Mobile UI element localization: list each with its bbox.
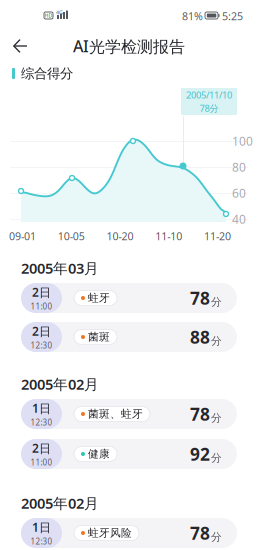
button[interactable]: 2日: [21, 322, 237, 352]
staticText: 88: [190, 325, 210, 348]
staticText: 100: [232, 133, 253, 149]
staticText: 78: [190, 402, 210, 425]
staticText: 菌斑: [88, 330, 110, 343]
staticText: 健康: [88, 447, 110, 460]
staticText: 09-01: [9, 229, 36, 243]
button[interactable]: Back: [5, 32, 37, 60]
staticText: 菌斑、蛀牙: [88, 407, 143, 420]
button[interactable]: 1日: [21, 518, 237, 548]
staticText: 分: [211, 411, 222, 424]
staticText: 5:25: [222, 9, 243, 23]
staticText: 2日: [32, 284, 51, 300]
staticText: HD: [44, 12, 52, 19]
staticText: 78: [190, 521, 210, 544]
staticText: 11:00: [30, 457, 52, 468]
staticText: 11:00: [30, 301, 52, 312]
staticText: 分: [211, 451, 222, 464]
staticText: 60: [232, 185, 246, 201]
staticText: 11-10: [155, 229, 182, 243]
button[interactable]: 1日: [21, 399, 237, 429]
staticText: 10-05: [58, 229, 85, 243]
staticText: 综合得分: [21, 65, 73, 82]
staticText: 92: [190, 442, 210, 465]
staticText: 2005年03月: [21, 258, 99, 278]
staticText: 4G: [56, 9, 63, 16]
staticText: 40: [232, 211, 246, 227]
staticText: 分: [211, 334, 222, 347]
staticText: 蛀牙风险: [88, 526, 132, 539]
staticText: 2日: [32, 323, 51, 339]
staticText: 12:30: [30, 340, 52, 351]
button[interactable]: 2日: [21, 283, 237, 313]
staticText: 12:30: [30, 417, 52, 428]
staticText: 81%: [182, 9, 203, 23]
button[interactable]: 2日: [21, 439, 237, 469]
staticText: 1日: [32, 400, 51, 416]
staticText: 2005/11/10: [186, 89, 232, 101]
staticText: 12:30: [30, 536, 52, 547]
staticText: 11-20: [204, 229, 231, 243]
staticText: 蛀牙: [88, 291, 110, 304]
staticText: 80: [232, 159, 246, 175]
staticText: 2005年02月: [21, 493, 99, 513]
staticText: 10-20: [106, 229, 133, 243]
staticText: 分: [211, 295, 222, 308]
staticText: 78: [190, 286, 210, 309]
staticText: 2日: [32, 440, 51, 456]
staticText: 1日: [32, 519, 51, 535]
staticText: 78分: [199, 102, 218, 114]
staticText: 2005年02月: [21, 374, 99, 394]
staticText: 分: [211, 530, 222, 543]
staticText: AI光学检测报告: [73, 35, 185, 57]
